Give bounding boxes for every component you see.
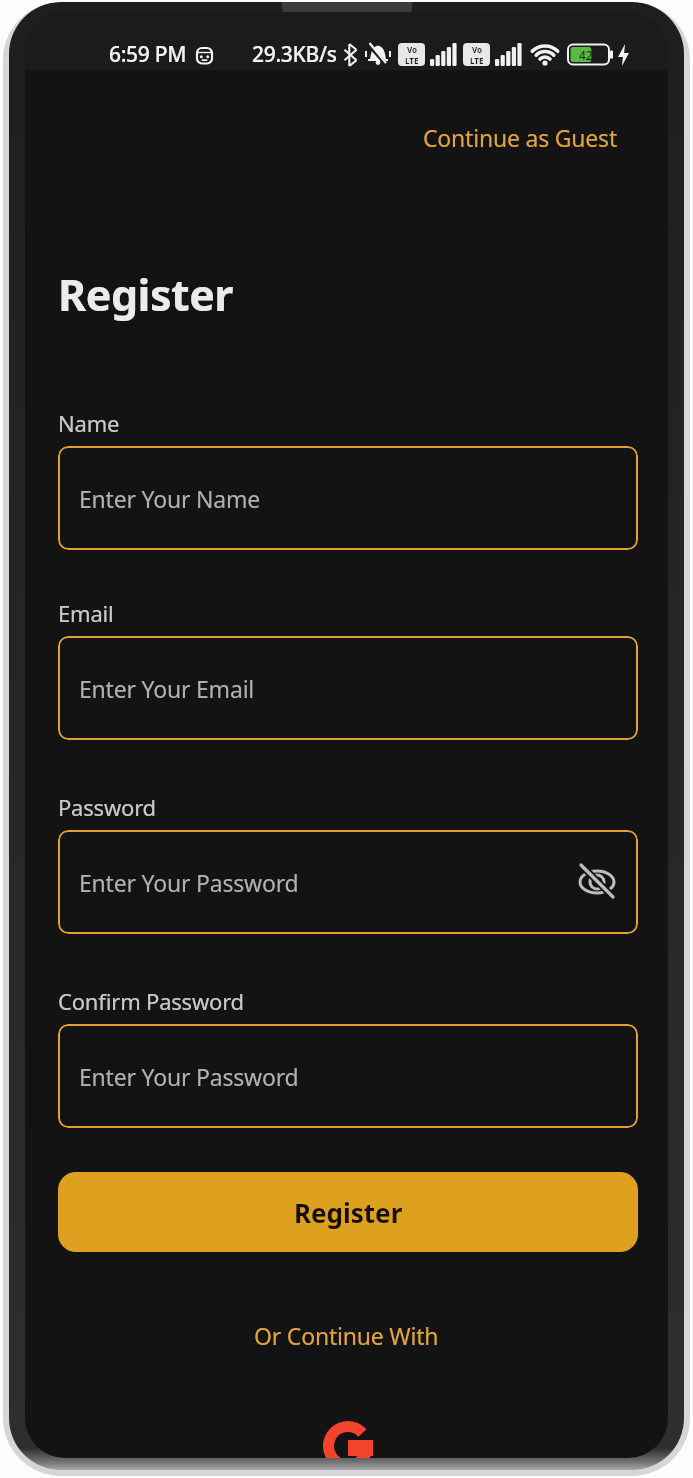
staticText: LTE [470,55,484,66]
staticText: LTE [405,55,419,66]
staticText: Register [294,1195,403,1230]
staticText: Continue as Guest [423,122,618,153]
button[interactable]: Continue as Guest [423,122,618,153]
button[interactable] [323,1421,373,1458]
staticText: Enter Your Name [79,483,261,514]
staticText: Enter Your Password [79,867,299,898]
staticText: Register [58,265,234,324]
button[interactable]: Enter Your Password [58,830,638,934]
staticText: 29.3KB/s [252,40,337,69]
staticText: Confirm Password [58,986,244,1016]
staticText: Enter Your Email [79,673,255,704]
button[interactable] [575,863,619,901]
button[interactable]: Enter Your Name [58,446,638,550]
staticText: Password [58,792,156,822]
button[interactable]: Register [58,1172,638,1252]
staticText: Vo [407,44,418,55]
staticText: 6:59 PM [109,40,187,69]
button[interactable]: Enter Your Email [58,636,638,740]
staticText: Or Continue With [254,1320,439,1351]
staticText: Name [58,408,120,438]
staticText: Email [58,598,114,628]
staticText: Enter Your Password [79,1061,299,1092]
staticText: 42 [579,47,593,63]
staticText: Vo [472,44,483,55]
button[interactable]: Enter Your Password [58,1024,638,1128]
